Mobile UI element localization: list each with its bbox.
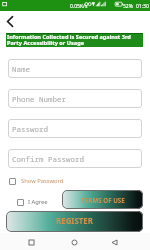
- button[interactable]: I Agree: [17, 198, 48, 206]
- staticText: 01:30: [136, 3, 149, 10]
- staticText: 52%: [123, 3, 133, 10]
- button[interactable]: Show Password: [9, 177, 64, 185]
- staticText: TERMS OF USE: [81, 196, 125, 204]
- button[interactable]: Back: [2, 13, 18, 29]
- staticText: REGISTER: [56, 216, 93, 227]
- staticText: Phone Number: [12, 94, 66, 104]
- button[interactable]: Confirm Password: [8, 149, 142, 168]
- staticText: Confirm Password: [12, 154, 84, 164]
- staticText: Show Password: [21, 177, 64, 185]
- button[interactable]: TERMS OF USE: [62, 190, 143, 209]
- button[interactable]: Recents: [24, 235, 38, 249]
- button[interactable]: Phone Number: [8, 89, 142, 108]
- staticText: Information Collected is Secured against…: [7, 33, 131, 47]
- button[interactable]: Name: [8, 59, 142, 78]
- staticText: I Agree: [28, 198, 48, 206]
- staticText: Name: [12, 64, 30, 74]
- button[interactable]: REGISTER: [6, 211, 143, 232]
- button[interactable]: Back: [107, 235, 121, 249]
- button[interactable]: Home: [67, 235, 81, 249]
- staticText: Password: [12, 124, 48, 134]
- button[interactable]: Password: [8, 119, 142, 138]
- staticText: 0.05K/s: [70, 3, 88, 10]
